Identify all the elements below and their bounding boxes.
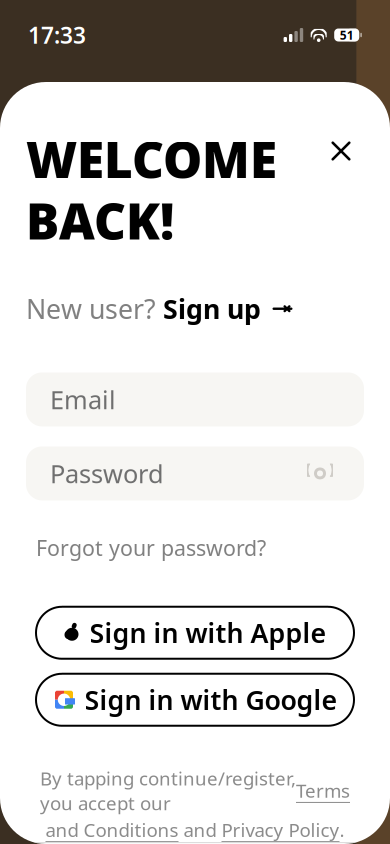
button[interactable]: Sign in with Apple (36, 607, 354, 659)
button[interactable]: Privacy Policy (221, 817, 339, 842)
staticText: . (339, 817, 344, 842)
staticText: Sign up (163, 291, 261, 326)
staticText: and (178, 817, 221, 842)
button[interactable]: Forgot your password? (36, 528, 266, 567)
staticText: Sign in with Apple (89, 615, 326, 650)
staticText: 51 (340, 27, 354, 43)
staticText: By tapping continue/register, you accept… (40, 766, 296, 815)
staticText: and Conditions (45, 817, 178, 842)
button[interactable]: Terms (296, 778, 350, 803)
staticText: Terms (296, 778, 350, 803)
staticText: BACK! (26, 187, 174, 253)
button[interactable]: Close (318, 128, 364, 174)
staticText: Privacy Policy (221, 817, 339, 842)
staticText: Forgot your password? (36, 533, 266, 562)
staticText: WELCOME (26, 126, 277, 191)
button[interactable]: and Conditions (45, 817, 178, 842)
button[interactable]: New user? (26, 285, 293, 332)
staticText: New user? (26, 291, 163, 326)
staticText: Password (50, 457, 164, 490)
staticText: 17:33 (28, 20, 86, 50)
button[interactable]: Sign in with Google (36, 674, 354, 726)
button[interactable]: Show password (300, 457, 340, 489)
staticText: Email (50, 383, 116, 416)
staticText: Sign in with Google (84, 682, 337, 717)
